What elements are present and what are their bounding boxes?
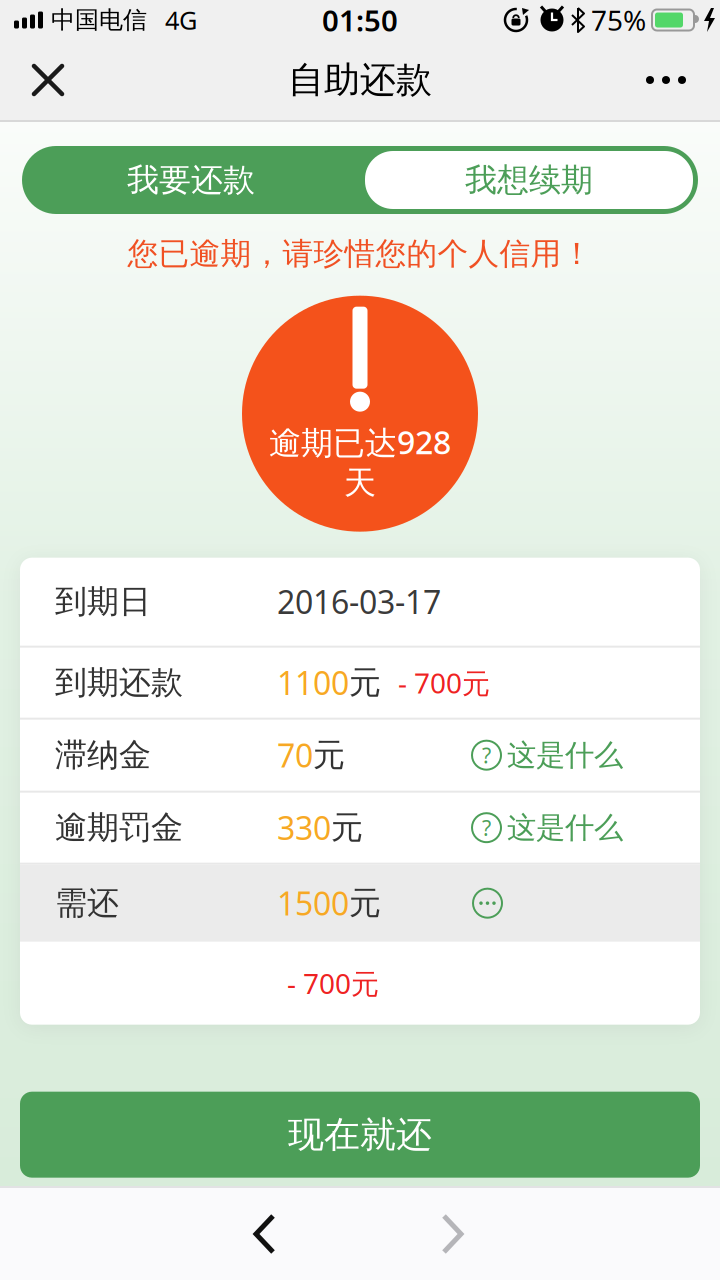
staticText: 逾期已达928 — [269, 421, 451, 463]
staticText: 2016-03-17 — [277, 580, 441, 623]
button[interactable]: ? — [20, 810, 623, 846]
staticText: 您已逾期，请珍惜您的个人信用！ — [127, 235, 592, 273]
staticText: 需还 — [55, 883, 119, 923]
staticText: 元 — [349, 663, 381, 702]
button[interactable]: Forward — [0, 1188, 461, 1280]
button[interactable]: 我想续期 — [360, 151, 698, 209]
staticText: 滞纳金 — [55, 735, 151, 775]
button[interactable]: 我要还款 — [22, 146, 360, 214]
staticText: 这是什么 — [507, 737, 623, 773]
staticText: - 700元 — [398, 664, 490, 701]
staticText: 我要还款 — [127, 160, 255, 200]
button[interactable]: More — [626, 40, 720, 120]
staticText: 我想续期 — [465, 160, 593, 200]
staticText: 01:50 — [322, 0, 398, 39]
staticText: 75% — [591, 1, 646, 39]
staticText: 到期还款 — [55, 663, 183, 702]
staticText: ? — [482, 813, 491, 842]
button[interactable]: More detail — [20, 889, 502, 918]
staticText: 1500 — [277, 882, 349, 924]
staticText: 天 — [344, 463, 376, 502]
staticText: 70 — [277, 734, 313, 776]
staticText: 4G — [165, 3, 197, 37]
staticText: ? — [482, 741, 491, 769]
button[interactable]: ? — [20, 737, 623, 773]
staticText: 元 — [331, 808, 363, 847]
staticText: 这是什么 — [507, 810, 623, 846]
staticText: 现在就还 — [288, 1113, 432, 1157]
staticText: - 700元 — [287, 965, 379, 1002]
button[interactable]: Back — [0, 1188, 273, 1280]
staticText: 330 — [277, 806, 331, 849]
staticText: 中国电信 — [51, 5, 147, 35]
staticText: 自助还款 — [288, 58, 432, 102]
staticText: 元 — [349, 883, 381, 923]
staticText: 到期日 — [55, 582, 151, 621]
staticText: 逾期罚金 — [55, 808, 183, 847]
staticText: 元 — [313, 735, 345, 775]
staticText: 1100 — [277, 661, 349, 704]
button[interactable]: 现在就还 — [20, 1092, 700, 1178]
button[interactable]: Close — [0, 41, 82, 119]
